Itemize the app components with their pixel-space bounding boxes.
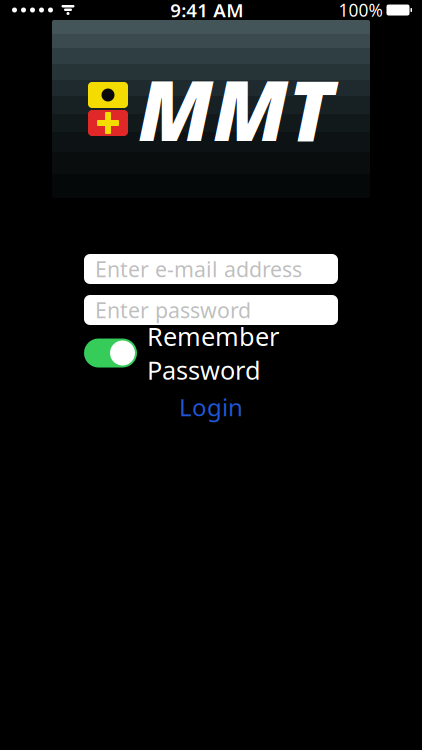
staticText: Remember Password bbox=[147, 319, 279, 387]
staticText: 9:41 AM bbox=[170, 0, 243, 22]
button[interactable]: Remember Password bbox=[84, 338, 137, 367]
staticText: MMT bbox=[138, 54, 334, 164]
staticText: Enter password bbox=[95, 296, 251, 324]
staticText: 100% bbox=[338, 0, 382, 21]
button[interactable]: Enter password bbox=[84, 295, 338, 325]
button[interactable]: Enter e-mail address bbox=[84, 254, 338, 284]
staticText: Enter e-mail address bbox=[95, 255, 302, 283]
button[interactable]: Login bbox=[84, 394, 338, 420]
staticText: Login bbox=[179, 391, 243, 423]
